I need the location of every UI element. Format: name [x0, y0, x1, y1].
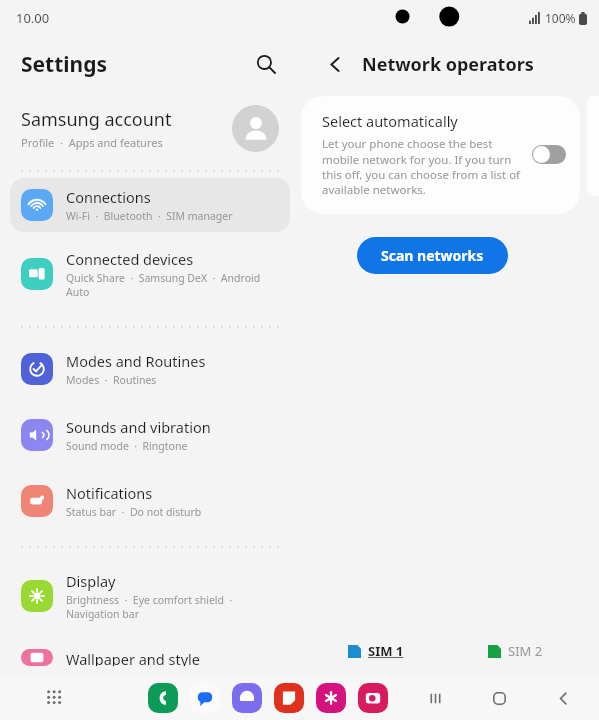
staticText: 100%: [545, 10, 576, 26]
staticText: Display: [66, 571, 116, 591]
staticText: Sound mode · Ringtone: [66, 439, 188, 453]
button[interactable]: Wallpaper and style: [10, 640, 290, 675]
button[interactable]: Search: [246, 44, 286, 84]
button[interactable]: Select automatically: [301, 96, 580, 214]
staticText: Quick Share · Samsung DeX · Android Auto: [66, 271, 261, 299]
button[interactable]: Modes and Routines: [10, 342, 290, 396]
staticText: Settings: [21, 50, 108, 79]
staticText: Sounds and vibration: [66, 417, 211, 437]
button[interactable]: SIM 2: [488, 639, 543, 663]
staticText: SIM 2: [508, 642, 543, 660]
staticText: Wi-Fi · Bluetooth · SIM manager: [66, 209, 233, 223]
button[interactable]: SIM 1: [348, 639, 404, 663]
staticText: Wallpaper and style: [66, 649, 200, 666]
button[interactable]: Home: [483, 682, 515, 714]
staticText: Status bar · Do not disturb: [66, 505, 202, 519]
button[interactable]: Display: [10, 562, 290, 630]
button[interactable]: All apps: [38, 681, 72, 715]
button[interactable]: Recents: [419, 682, 451, 714]
button[interactable]: Sounds and vibration: [10, 408, 290, 462]
button[interactable]: Connections: [10, 178, 290, 232]
staticText: Scan networks: [381, 246, 484, 265]
button[interactable]: camera: [358, 683, 388, 713]
button[interactable]: Scan networks: [357, 237, 508, 274]
button[interactable]: Samsung account: [0, 92, 300, 164]
staticText: Let your phone choose the best mobile ne…: [322, 136, 522, 197]
staticText: SIM 1: [368, 642, 404, 660]
button[interactable]: Select automatically toggle: [532, 145, 566, 164]
staticText: Modes and Routines: [66, 351, 206, 371]
button[interactable]: messages: [190, 683, 220, 713]
staticText: Connected devices: [66, 249, 194, 269]
button[interactable]: store: [316, 683, 346, 713]
button[interactable]: Connected devices: [10, 240, 290, 308]
button[interactable]: Back: [318, 47, 352, 81]
button[interactable]: Notifications: [10, 474, 290, 528]
button[interactable]: Back: [547, 682, 579, 714]
staticText: Network operators: [362, 52, 534, 77]
button[interactable]: internet: [232, 683, 262, 713]
button[interactable]: phone: [148, 683, 178, 713]
button[interactable]: notes: [274, 683, 304, 713]
staticText: Brightness · Eye comfort shield · Naviga…: [66, 593, 233, 621]
staticText: 10.00: [16, 9, 50, 27]
staticText: Connections: [66, 187, 151, 207]
staticText: Modes · Routines: [66, 373, 157, 387]
staticText: Profile · Apps and features: [21, 135, 163, 150]
staticText: Select automatically: [322, 111, 458, 131]
staticText: Notifications: [66, 483, 153, 503]
staticText: Samsung account: [21, 107, 172, 132]
